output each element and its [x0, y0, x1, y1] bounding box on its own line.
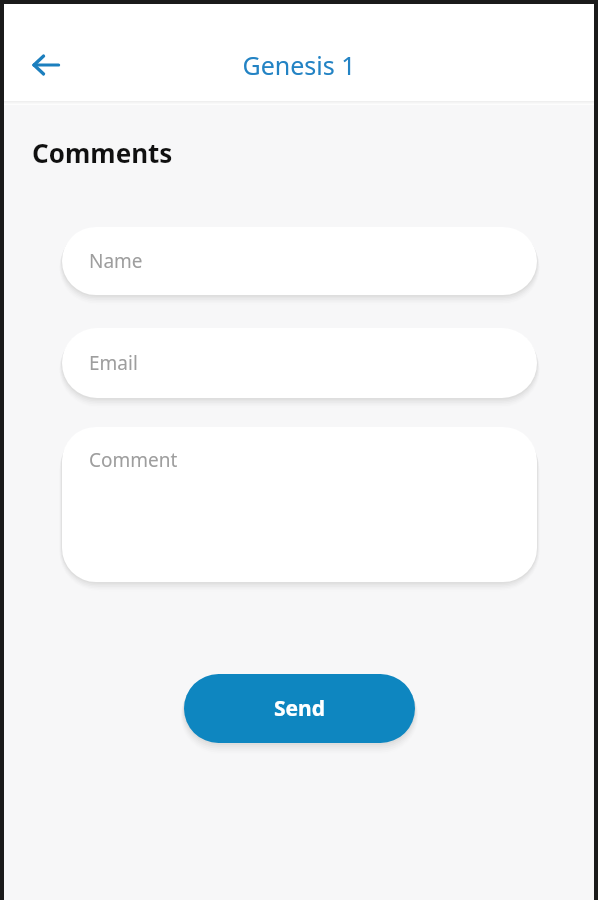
staticText: Genesis 1: [242, 48, 356, 82]
button[interactable]: Send: [184, 674, 415, 743]
staticText: Comments: [32, 135, 173, 170]
staticText: Send: [274, 694, 326, 723]
button[interactable]: Email: [62, 328, 537, 398]
staticText: Comment: [89, 447, 178, 473]
button[interactable]: Name: [62, 227, 537, 295]
staticText: Email: [89, 350, 138, 376]
button[interactable]: Comment: [62, 427, 537, 582]
button[interactable]: Back: [18, 37, 74, 93]
staticText: Name: [89, 248, 143, 274]
